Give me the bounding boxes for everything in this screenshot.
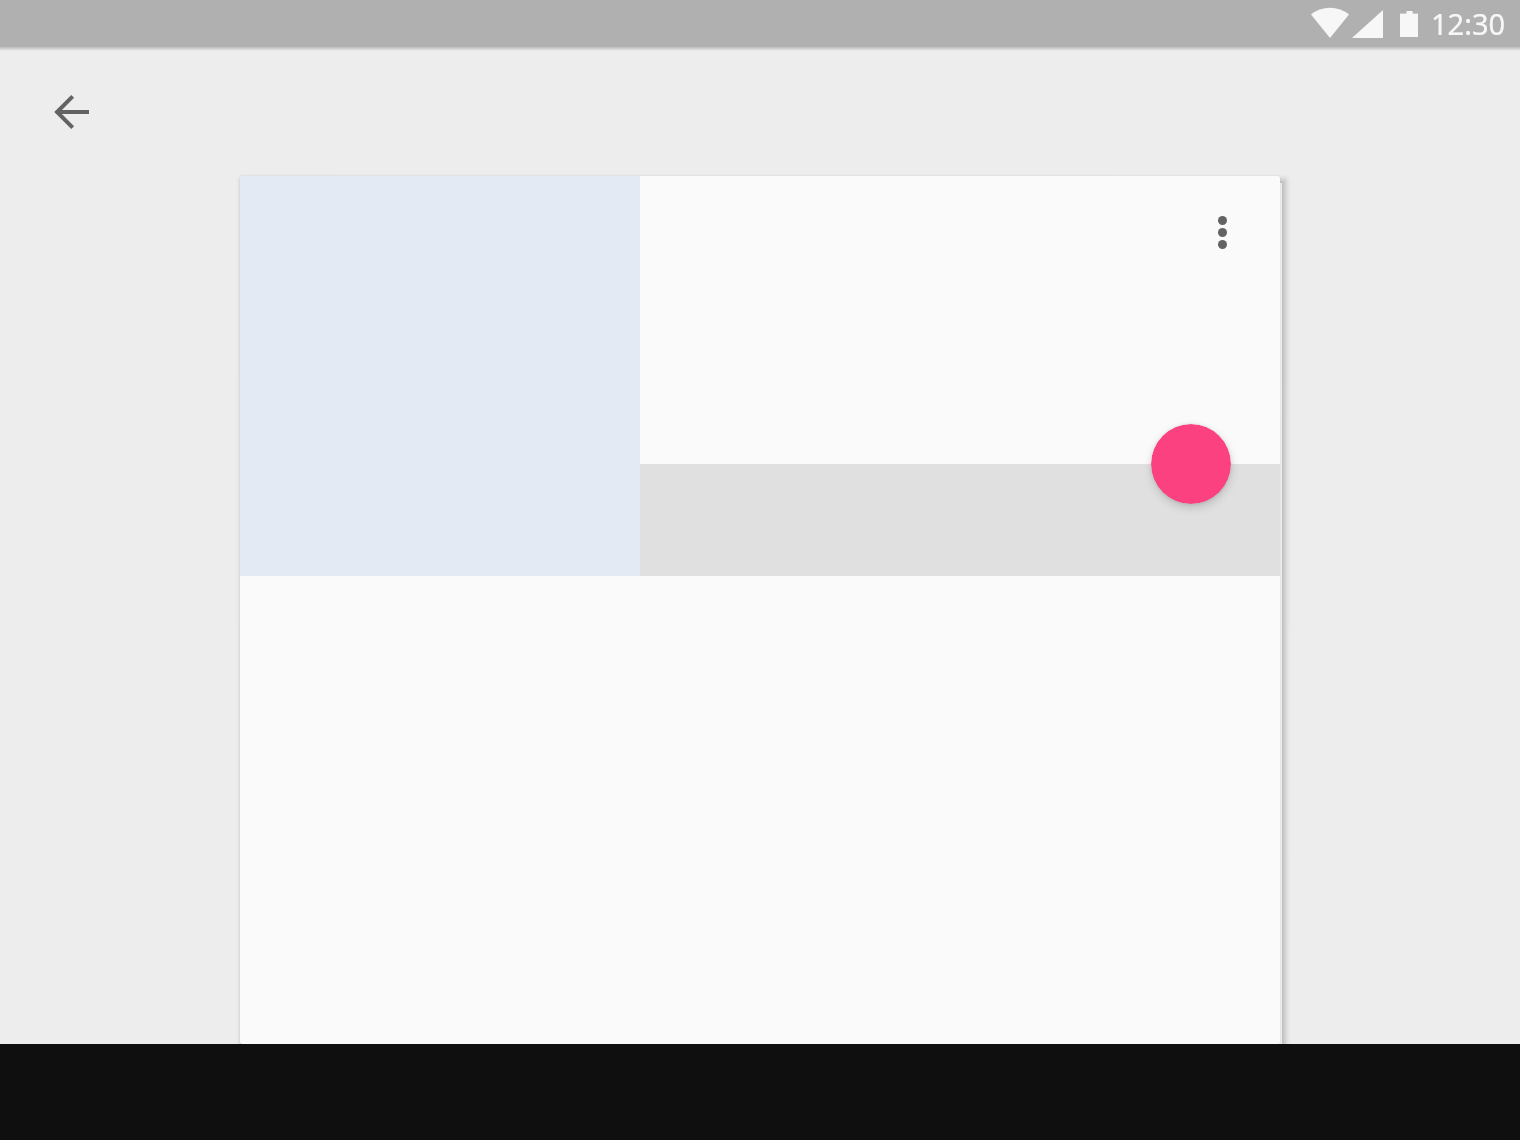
button[interactable]: More options <box>1174 184 1270 280</box>
button[interactable]: More options <box>240 176 1280 1044</box>
button[interactable]: Add <box>1151 424 1231 504</box>
staticText: 12:30 <box>1431 4 1506 43</box>
button[interactable]: Back <box>40 80 104 144</box>
